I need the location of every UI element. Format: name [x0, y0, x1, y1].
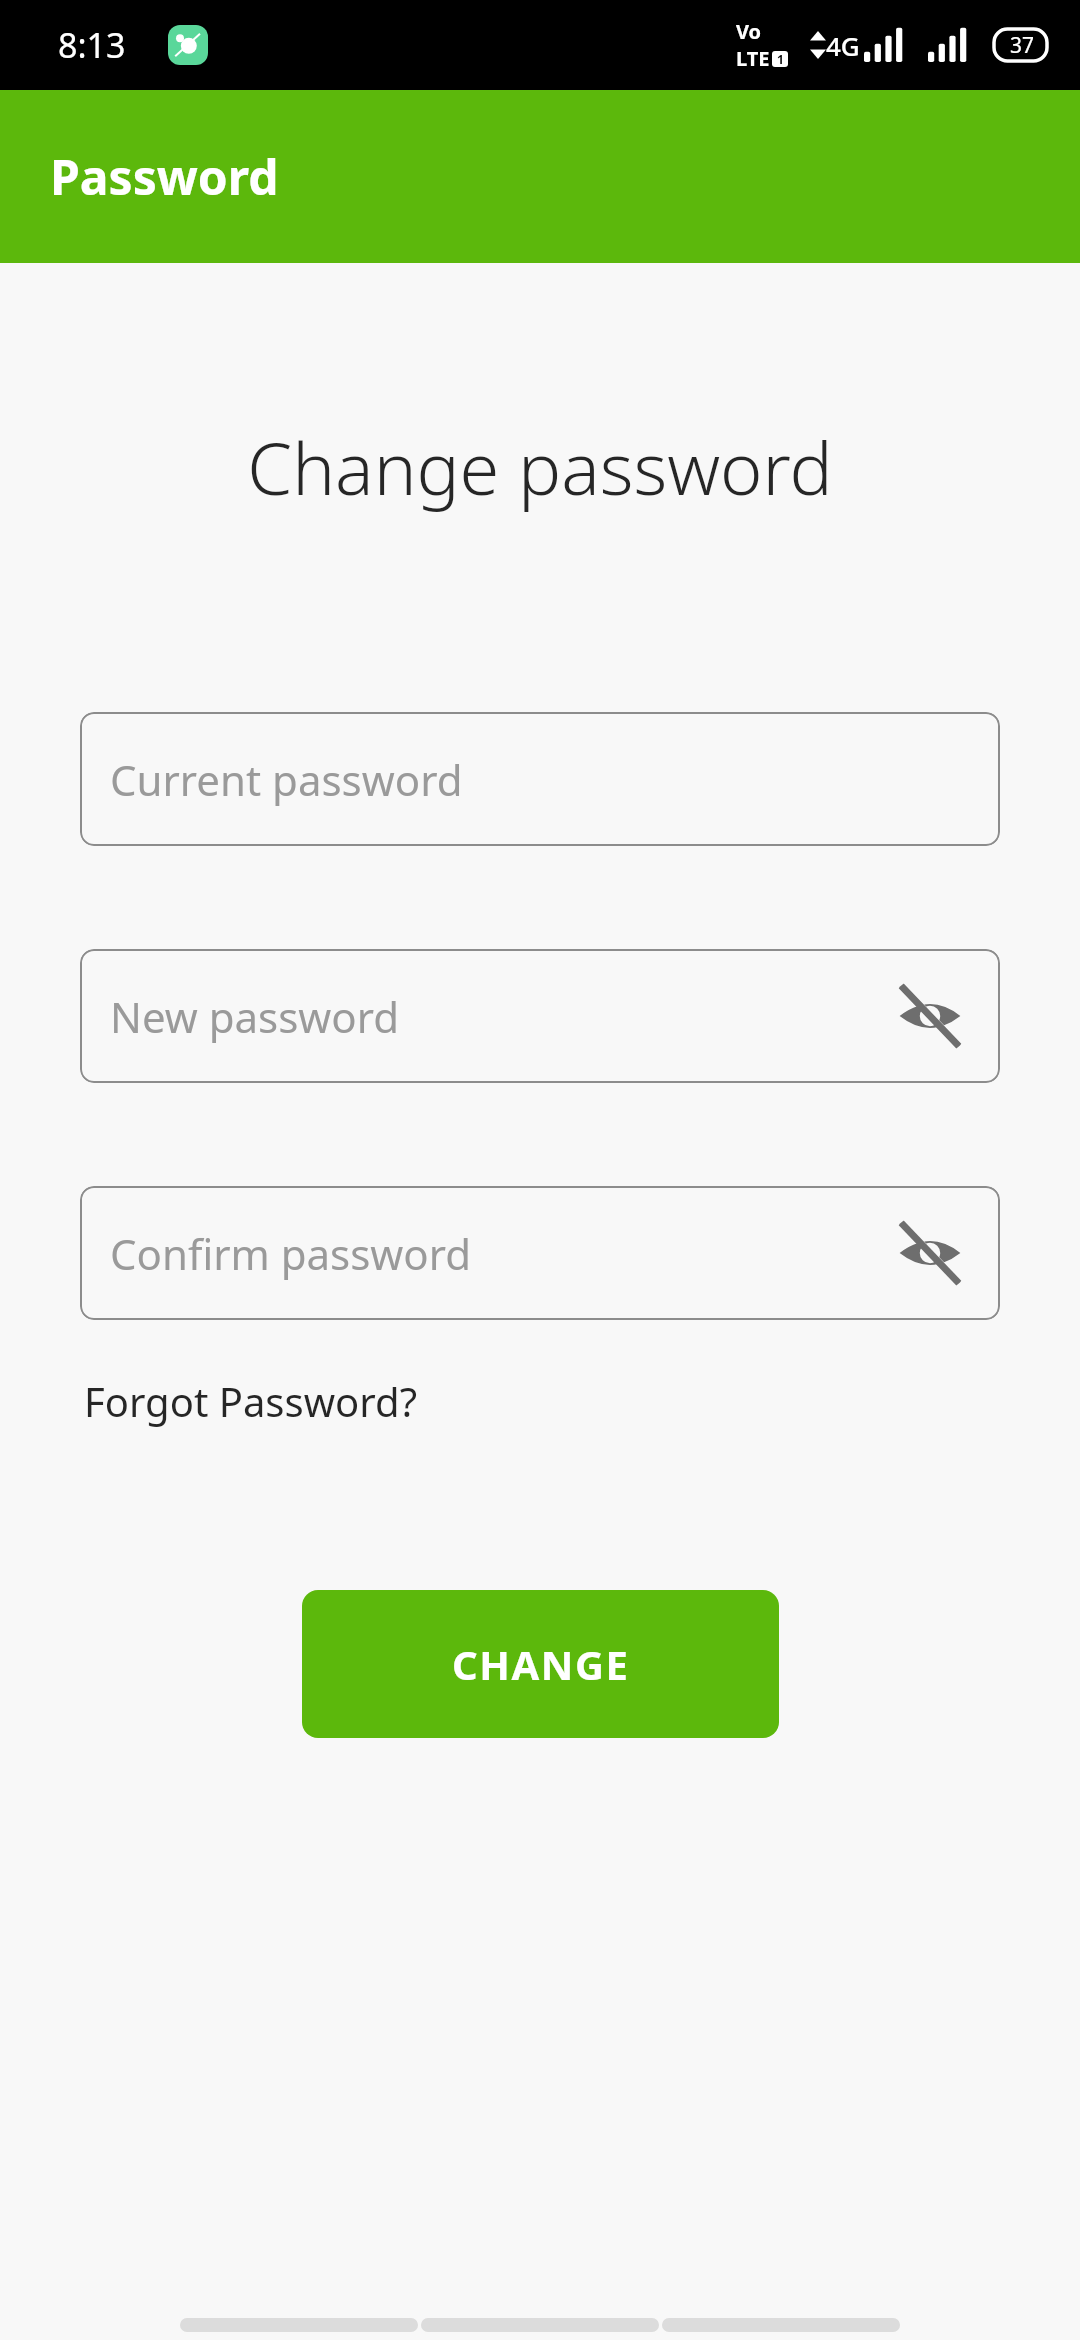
button[interactable]: CHANGE	[302, 1590, 779, 1738]
button[interactable]: Confirm password	[80, 1186, 1000, 1320]
staticText: Forgot Password?	[84, 1374, 417, 1428]
staticText: 8:13	[58, 22, 126, 68]
staticText: Password	[50, 144, 279, 209]
staticText: 4G	[826, 28, 860, 63]
button[interactable]: New password	[80, 949, 1000, 1083]
staticText: LTE	[736, 45, 770, 72]
staticText: 37	[1010, 31, 1035, 60]
button[interactable]: Forgot Password?	[80, 1368, 421, 1434]
staticText: CHANGE	[452, 1637, 630, 1691]
staticText: New password	[110, 988, 400, 1045]
staticText: Vo	[736, 18, 762, 45]
staticText: 1	[777, 51, 784, 67]
staticText: Confirm password	[110, 1225, 472, 1282]
button[interactable]: Current password	[80, 712, 1000, 846]
button[interactable]: Show password	[888, 1211, 972, 1295]
staticText: Change password	[0, 418, 1080, 516]
button[interactable]: Show password	[888, 974, 972, 1058]
staticText: Current password	[110, 751, 463, 808]
